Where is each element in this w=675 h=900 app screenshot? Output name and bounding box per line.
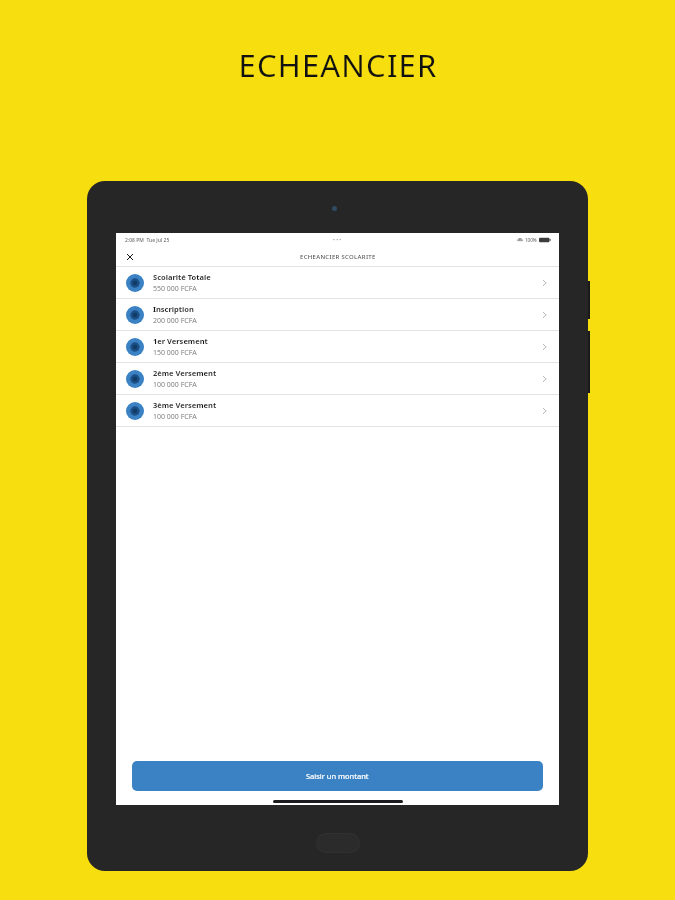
- staticText: 100 000 FCFA: [153, 412, 197, 422]
- button[interactable]: Saisir un montant: [132, 761, 543, 791]
- staticText: 2:08 PM Tue Jul 25: [125, 237, 170, 244]
- staticText: 100 000 FCFA: [153, 380, 197, 390]
- staticText: 2ème Versement: [153, 368, 217, 378]
- button[interactable]: Inscription: [116, 299, 559, 330]
- staticText: 1er Versement: [153, 336, 208, 346]
- button[interactable]: 3ème Versement: [116, 395, 559, 426]
- staticText: 550 000 FCFA: [153, 284, 197, 294]
- staticText: Scolarité Totale: [153, 272, 211, 282]
- button[interactable]: Scolarité Totale: [116, 267, 559, 298]
- staticText: 3ème Versement: [153, 400, 217, 410]
- button[interactable]: 1er Versement: [116, 331, 559, 362]
- staticText: 100%: [525, 237, 537, 243]
- staticText: Saisir un montant: [306, 771, 369, 781]
- button[interactable]: Fermer: [122, 249, 138, 265]
- staticText: • • •: [333, 237, 342, 244]
- staticText: ECHEANCIER: [238, 44, 438, 86]
- button[interactable]: 2ème Versement: [116, 363, 559, 394]
- staticText: ECHEANCIER SCOLARITE: [300, 253, 376, 261]
- staticText: Inscription: [153, 304, 194, 314]
- staticText: 150 000 FCFA: [153, 348, 197, 358]
- staticText: 200 000 FCFA: [153, 316, 197, 326]
